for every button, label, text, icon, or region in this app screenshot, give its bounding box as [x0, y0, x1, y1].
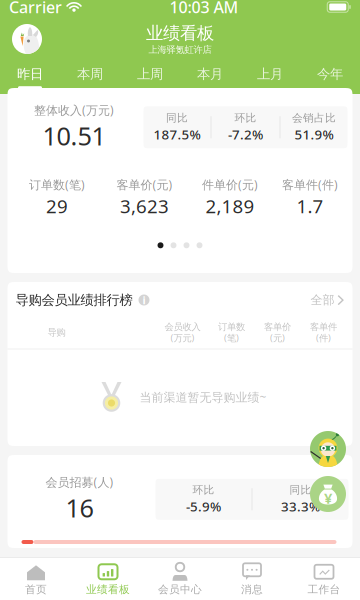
button[interactable]: Profile [0, 18, 42, 60]
staticText: 上海驿氪虹许店 [148, 44, 211, 55]
staticText: 首页 [25, 583, 47, 596]
staticText: 同比 [289, 483, 311, 496]
staticText: 上周 [137, 66, 163, 82]
staticText: 本月 [197, 66, 223, 82]
staticText: 整体收入(万元) [34, 102, 114, 118]
button[interactable]: 消息 [216, 558, 288, 600]
button[interactable]: 首页 [0, 558, 72, 600]
staticText: 环比 [192, 483, 214, 496]
staticText: 1.7 [296, 193, 323, 218]
staticText: 件单价(元) [202, 177, 258, 192]
button[interactable]: 本月 [180, 60, 240, 90]
button[interactable]: 会员中心 [144, 558, 216, 600]
staticText: 会员中心 [158, 583, 202, 596]
staticText: 29 [46, 193, 68, 218]
staticText: 16 [65, 491, 93, 524]
staticText: 上月 [257, 66, 283, 82]
button[interactable]: 业绩看板 [72, 558, 144, 600]
staticText: 订单数(笔) [29, 177, 85, 192]
staticText: 导购 [47, 327, 65, 338]
staticText: (万元) [170, 331, 194, 344]
staticText: 业绩看板 [86, 583, 130, 596]
staticText: 客单价(元) [116, 177, 172, 192]
button[interactable]: 上周 [120, 60, 180, 90]
staticText: (件) [316, 331, 331, 344]
button[interactable]: 上月 [240, 60, 300, 90]
button[interactable]: Assistant [310, 431, 346, 467]
staticText: 客单件 [310, 321, 337, 333]
staticText: -5.9% [186, 497, 221, 515]
staticText: 10:03 AM [169, 0, 238, 18]
staticText: 当前渠道暂无导购业绩~ [139, 389, 266, 405]
staticText: 订单数 [218, 321, 245, 333]
staticText: 工作台 [307, 583, 340, 596]
staticText: (元) [270, 331, 285, 344]
staticText: Carrier [9, 0, 62, 18]
button[interactable]: 工作台 [288, 558, 360, 600]
staticText: 187.5% [153, 125, 200, 143]
button[interactable]: 今年 [300, 60, 360, 90]
staticText: 导购会员业绩排行榜 [15, 292, 132, 308]
staticText: (笔) [224, 331, 239, 344]
staticText: 本周 [77, 66, 103, 82]
staticText: 同比 [166, 111, 188, 124]
staticText: 今年 [317, 66, 343, 82]
staticText: ¥ [324, 488, 332, 508]
staticText: 会销占比 [292, 111, 336, 124]
button[interactable]: 全部 [310, 285, 344, 315]
staticText: 3,623 [120, 193, 169, 218]
staticText: 会员招募(人) [45, 474, 113, 490]
staticText: 环比 [234, 111, 256, 124]
staticText: 会员收入 [164, 321, 200, 333]
staticText: 2,189 [205, 193, 254, 218]
button[interactable]: 本周 [60, 60, 120, 90]
staticText: 33.3% [281, 497, 320, 515]
staticText: 客单件(件) [282, 177, 338, 192]
button[interactable]: Revenue [310, 476, 346, 512]
staticText: 业绩看板 [146, 23, 214, 44]
staticText: -7.2% [228, 125, 263, 143]
button[interactable]: 昨日 [0, 60, 60, 90]
staticText: 消息 [241, 583, 263, 596]
staticText: 全部 [310, 293, 334, 307]
staticText: i [142, 293, 145, 307]
staticText: 10.51 [42, 119, 105, 152]
staticText: 客单价 [264, 321, 291, 333]
staticText: 昨日 [17, 66, 43, 82]
staticText: 51.9% [294, 125, 333, 143]
